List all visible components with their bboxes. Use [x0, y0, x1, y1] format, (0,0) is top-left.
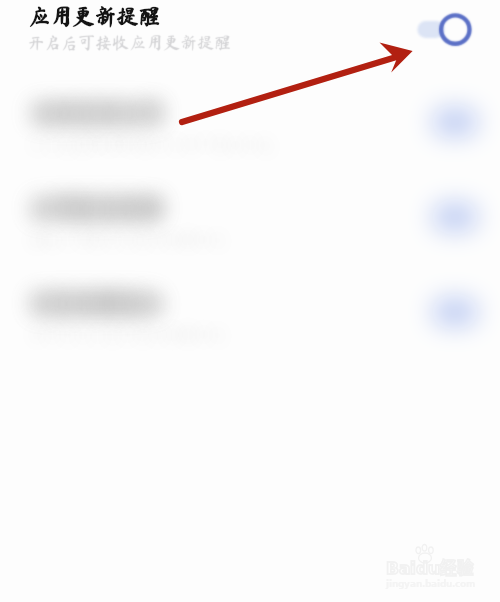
button[interactable]: 应用推荐提醒: [0, 153, 500, 248]
button[interactable]: 安装提醒通知: [0, 248, 500, 343]
button[interactable]: 自动更新应用 开关: [422, 89, 478, 123]
button[interactable]: 自动更新应用: [0, 58, 500, 153]
button[interactable]: 应用推荐提醒 开关: [422, 184, 478, 218]
button[interactable]: 安装提醒通知 开关: [422, 279, 478, 313]
button[interactable]: 应用更新提醒开关: [412, 9, 478, 49]
button[interactable]: 应用更新提醒开关: [0, 0, 500, 58]
